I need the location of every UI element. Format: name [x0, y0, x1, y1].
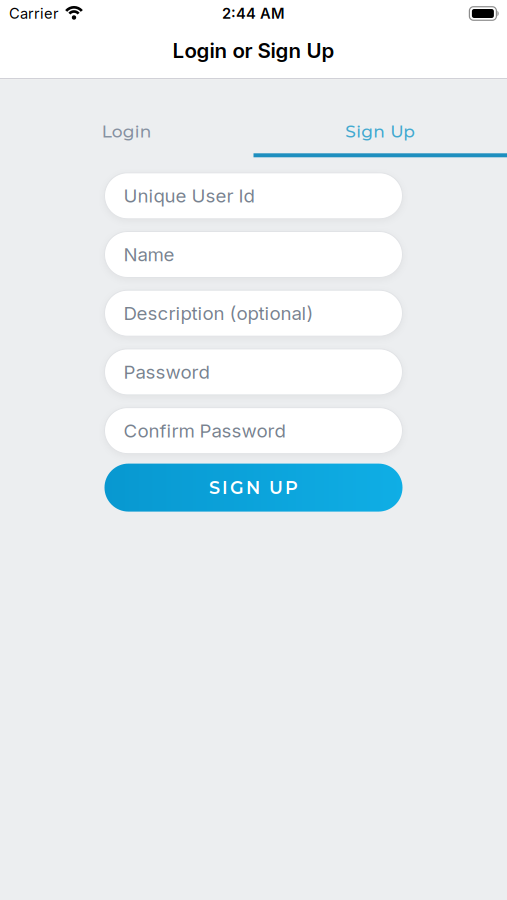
- button[interactable]: Sign Up: [253, 109, 507, 157]
- staticText: Confirm Password: [123, 419, 285, 442]
- staticText: Name: [123, 243, 174, 266]
- button[interactable]: Description (optional): [104, 290, 402, 336]
- staticText: Password: [123, 361, 209, 383]
- staticText: 2:44 AM: [222, 5, 285, 22]
- staticText: Carrier: [9, 5, 59, 22]
- staticText: Login or Sign Up: [172, 38, 334, 63]
- button[interactable]: Confirm Password: [104, 408, 402, 454]
- button[interactable]: Password: [104, 349, 402, 395]
- staticText: Description (optional): [123, 302, 313, 324]
- staticText: S I G N U P: [209, 477, 298, 498]
- button[interactable]: SIGN UP: [104, 464, 402, 512]
- staticText: Sign Up: [345, 121, 415, 142]
- button[interactable]: Login: [0, 109, 253, 157]
- staticText: Unique User Id: [123, 184, 254, 207]
- staticText: Login: [102, 121, 152, 142]
- button[interactable]: Unique User Id: [104, 173, 402, 219]
- button[interactable]: Name: [104, 231, 402, 277]
